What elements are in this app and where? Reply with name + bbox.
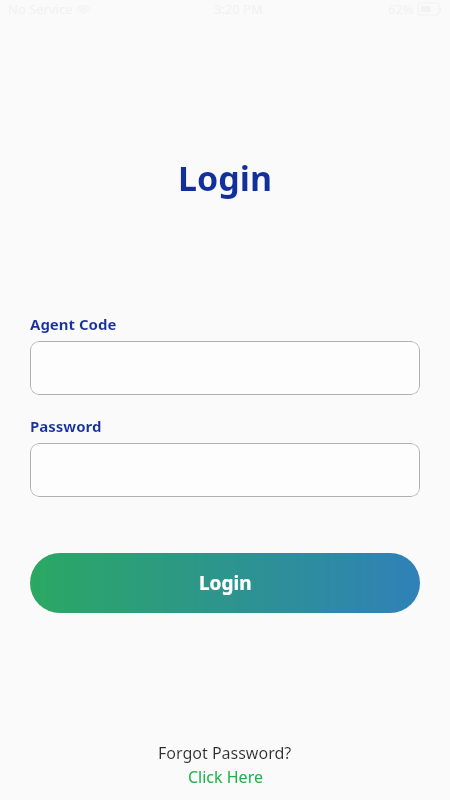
button[interactable]: Login [30,553,420,613]
staticText: Forgot Password? [158,742,292,764]
button[interactable]: Click Here [188,766,263,788]
staticText: Agent Code [30,314,117,334]
staticText: Login [0,155,450,201]
button[interactable]: Text input field [30,443,420,497]
button[interactable]: Text input field [30,341,420,395]
staticText: Password [30,416,102,436]
staticText: Click Here [188,766,263,788]
staticText: Login [199,570,252,596]
